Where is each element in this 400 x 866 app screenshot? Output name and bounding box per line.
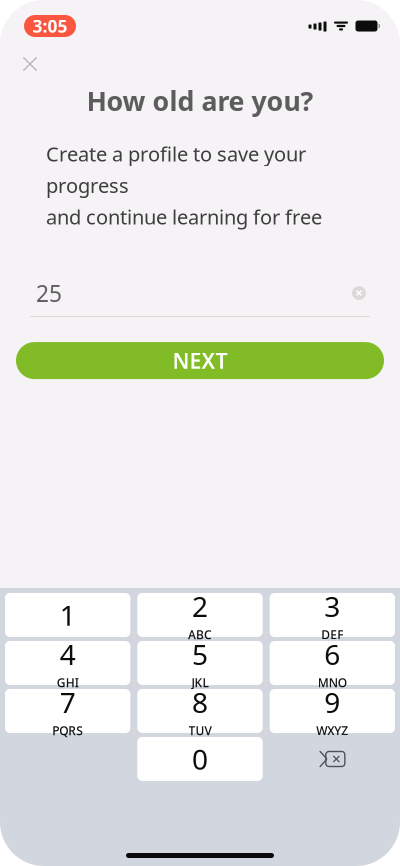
button[interactable]: 8 (137, 689, 263, 733)
staticText: 6 (324, 635, 340, 673)
staticText: 5 (192, 635, 208, 673)
staticText: DEF (321, 627, 343, 642)
button[interactable]: 6 (270, 641, 395, 685)
button[interactable]: Clear text (348, 282, 370, 304)
button[interactable]: Close (17, 51, 43, 77)
button[interactable]: 7 (5, 689, 130, 733)
staticText: 3 (324, 587, 340, 625)
staticText: 4 (60, 635, 76, 673)
staticText: How old are you? (86, 83, 313, 118)
button[interactable]: 9 (270, 689, 395, 733)
staticText: 8 (192, 683, 208, 721)
staticText: GHI (57, 675, 79, 690)
staticText: 9 (324, 683, 340, 721)
staticText: ABC (188, 627, 212, 642)
staticText: 2 (192, 587, 208, 625)
staticText: MNO (318, 675, 347, 690)
staticText: 1 (60, 596, 76, 634)
staticText: 3:05 (32, 14, 67, 37)
button[interactable]: 5 (137, 641, 263, 685)
button[interactable]: 1 (5, 593, 130, 637)
button[interactable]: 2 (137, 593, 263, 637)
staticText: TUV (188, 723, 211, 738)
staticText: JKL (191, 675, 208, 690)
staticText: 25 (36, 278, 62, 308)
button[interactable]: 4 (5, 641, 130, 685)
staticText: NEXT (172, 346, 227, 375)
staticText: 7 (60, 683, 76, 721)
button[interactable]: NEXT (16, 342, 384, 379)
button[interactable]: Delete (270, 737, 395, 781)
staticText: Create a profile to save your progress a… (46, 140, 322, 230)
staticText: 0 (192, 740, 208, 778)
staticText: WXYZ (316, 723, 348, 738)
staticText: PQRS (52, 723, 83, 738)
button[interactable]: 3 (270, 593, 395, 637)
button[interactable]: 0 (137, 737, 263, 781)
